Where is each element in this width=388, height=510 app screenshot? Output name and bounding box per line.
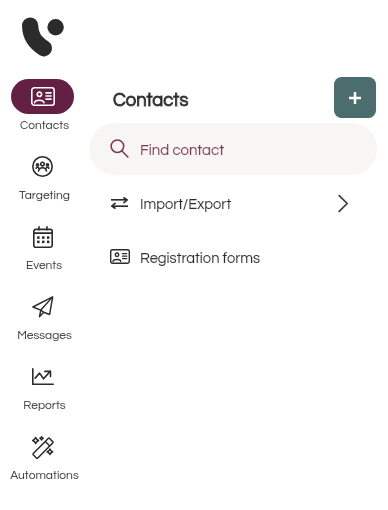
- button[interactable]: Find contact: [89, 123, 377, 175]
- staticText: Contacts: [20, 119, 69, 131]
- staticText: Messages: [17, 329, 72, 341]
- staticText: Events: [26, 259, 62, 271]
- staticText: Registration forms: [140, 251, 261, 266]
- button[interactable]: Events: [1, 219, 87, 271]
- staticText: Automations: [10, 469, 79, 481]
- staticText: Reports: [23, 399, 66, 411]
- staticText: Reports: [23, 399, 66, 411]
- button[interactable]: Import/Export: [100, 181, 376, 225]
- button[interactable]: Automations: [1, 429, 87, 481]
- staticText: Find contact: [140, 143, 225, 158]
- staticText: Find contact: [140, 143, 225, 158]
- button[interactable]: Targeting: [1, 149, 87, 201]
- button[interactable]: Messages: [1, 289, 87, 341]
- other: Open: [338, 195, 348, 212]
- staticText: Targeting: [19, 189, 70, 201]
- staticText: Automations: [10, 469, 79, 481]
- staticText: Registration forms: [140, 251, 261, 266]
- staticText: Import/Export: [140, 197, 232, 212]
- staticText: Contacts: [20, 119, 69, 131]
- staticText: Contacts: [113, 91, 189, 110]
- button[interactable]: Reports: [1, 359, 87, 411]
- button[interactable]: Registration forms: [100, 235, 376, 279]
- staticText: Contacts: [113, 91, 189, 110]
- staticText: Events: [26, 259, 62, 271]
- staticText: Messages: [17, 329, 72, 341]
- button[interactable]: Add contact: [334, 77, 376, 118]
- button[interactable]: Contacts: [1, 79, 87, 131]
- staticText: Import/Export: [140, 197, 232, 212]
- staticText: Targeting: [19, 189, 70, 201]
